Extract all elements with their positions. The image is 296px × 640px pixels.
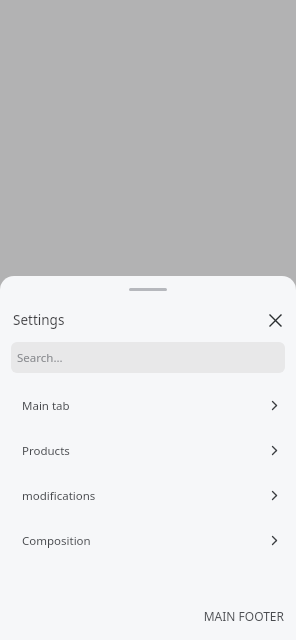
staticText: Composition <box>22 533 272 549</box>
staticText: modifications <box>22 488 272 504</box>
staticText: Products <box>22 443 272 459</box>
button[interactable]: Main tab <box>0 383 296 428</box>
staticText: Settings <box>13 311 65 329</box>
button[interactable]: Close <box>263 308 287 332</box>
staticText: Search... <box>17 350 63 366</box>
button[interactable]: Products <box>0 428 296 473</box>
staticText: MAIN FOOTER <box>203 608 284 624</box>
button[interactable]: modifications <box>0 473 296 518</box>
button[interactable]: Composition <box>0 518 296 563</box>
button[interactable]: Search... <box>11 342 285 373</box>
staticText: Main tab <box>22 398 272 414</box>
